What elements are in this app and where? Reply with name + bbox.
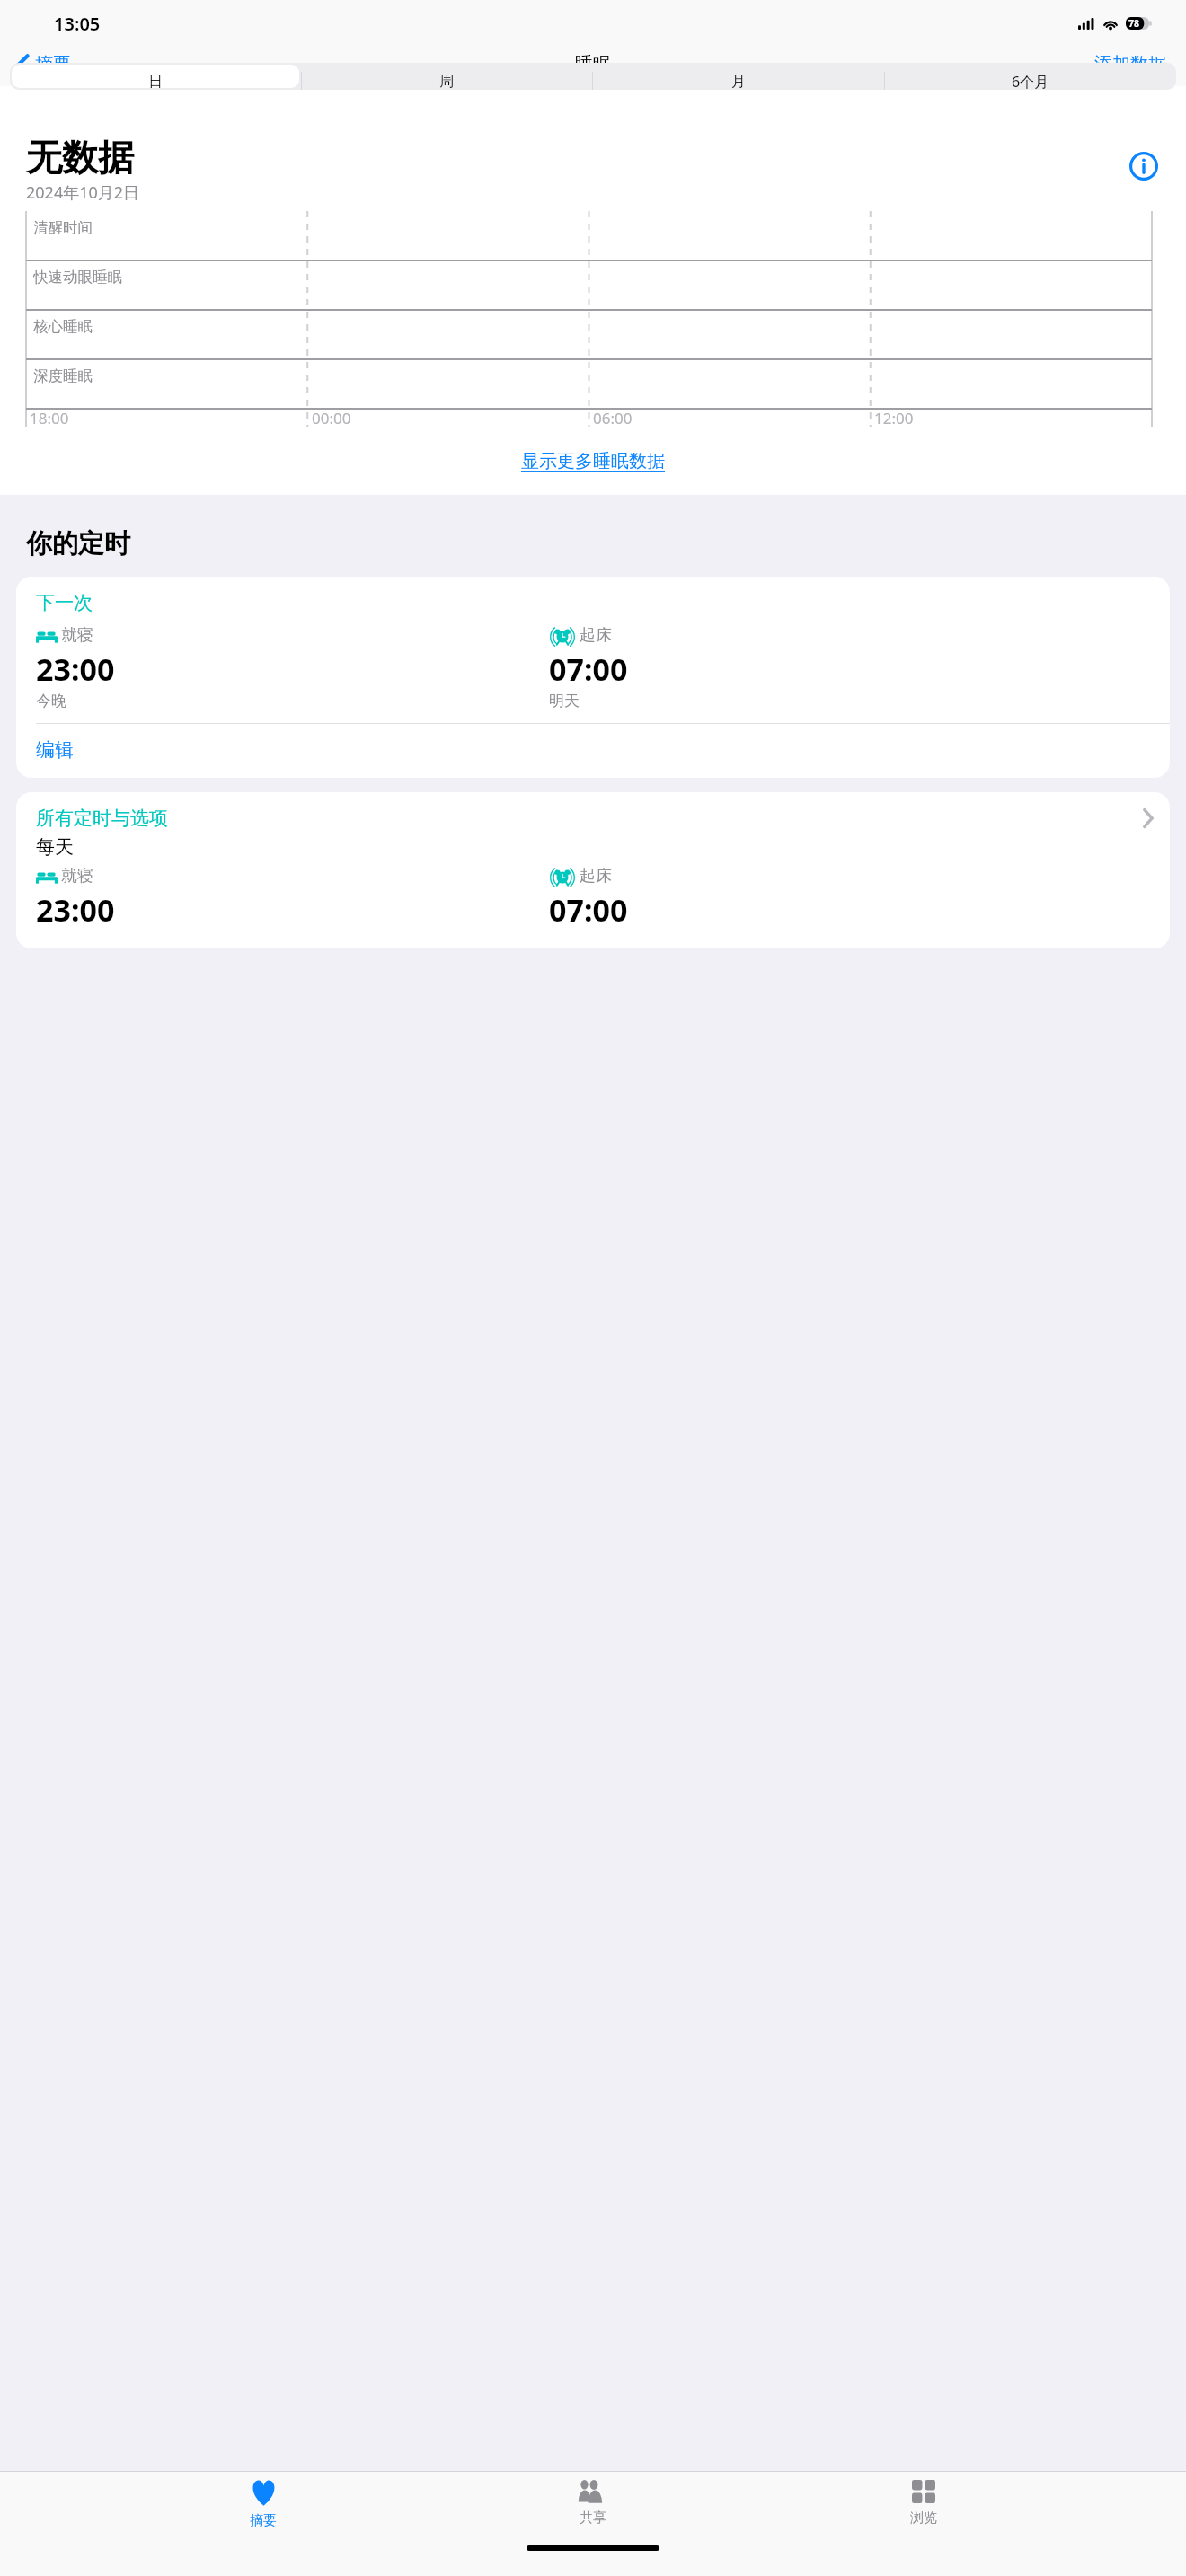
staticText: 日 (148, 73, 163, 90)
button[interactable]: 添加数据 (1075, 46, 1186, 83)
staticText: 摘要 (250, 2512, 277, 2529)
button[interactable]: 月 (592, 63, 884, 90)
button[interactable]: 摘要 (13, 49, 76, 79)
staticText: 起床 (580, 866, 612, 887)
staticText: 无数据 (26, 135, 134, 180)
staticText: 每天 (36, 835, 74, 859)
button[interactable]: 周 (301, 63, 592, 90)
staticText: 13:05 (54, 12, 101, 36)
staticText: 12:00 (874, 408, 914, 428)
button[interactable]: 摘要 (196, 2472, 331, 2545)
staticText: 摘要 (35, 53, 71, 75)
staticText: 核心睡眠 (33, 317, 93, 336)
button[interactable]: 日 (10, 63, 301, 90)
button[interactable]: 共享 (526, 2472, 660, 2545)
staticText: 编辑 (36, 738, 74, 762)
staticText: 23:00 (36, 889, 115, 931)
staticText: 今晚 (36, 692, 66, 710)
staticText: 深度睡眠 (33, 366, 93, 385)
button[interactable]: 浏览 (856, 2472, 991, 2545)
staticText: 就寝 (61, 625, 93, 646)
staticText: 下一次 (36, 591, 93, 614)
staticText: 就寝 (61, 866, 93, 887)
staticText: 睡眠 (575, 53, 611, 75)
staticText: 07:00 (549, 889, 628, 931)
staticText: 所有定时与选项 (36, 807, 168, 830)
staticText: 快速动眼睡眠 (33, 268, 122, 287)
staticText: 78 (1128, 17, 1140, 30)
staticText: 18:00 (30, 408, 69, 428)
staticText: 月 (731, 73, 746, 90)
button[interactable]: 信息 (1125, 147, 1163, 185)
button[interactable]: 所有定时与选项 (16, 792, 1170, 948)
staticText: 周 (439, 73, 454, 90)
staticText: 23:00 (36, 648, 115, 690)
button[interactable]: 编辑 (16, 724, 1170, 778)
staticText: 共享 (580, 2510, 606, 2527)
staticText: 你的定时 (26, 527, 130, 560)
staticText: 06:00 (593, 408, 633, 428)
staticText: 浏览 (910, 2510, 937, 2527)
staticText: 6个月 (1012, 72, 1049, 90)
staticText: 00:00 (312, 408, 351, 428)
button[interactable]: 显示更多睡眠数据 (503, 443, 683, 480)
staticText: 清醒时间 (33, 218, 93, 237)
button[interactable]: 6个月 (884, 63, 1176, 90)
staticText: 起床 (580, 625, 612, 646)
staticText: 明天 (549, 692, 580, 710)
staticText: 2024年10月2日 (26, 181, 140, 204)
staticText: 07:00 (549, 648, 628, 690)
